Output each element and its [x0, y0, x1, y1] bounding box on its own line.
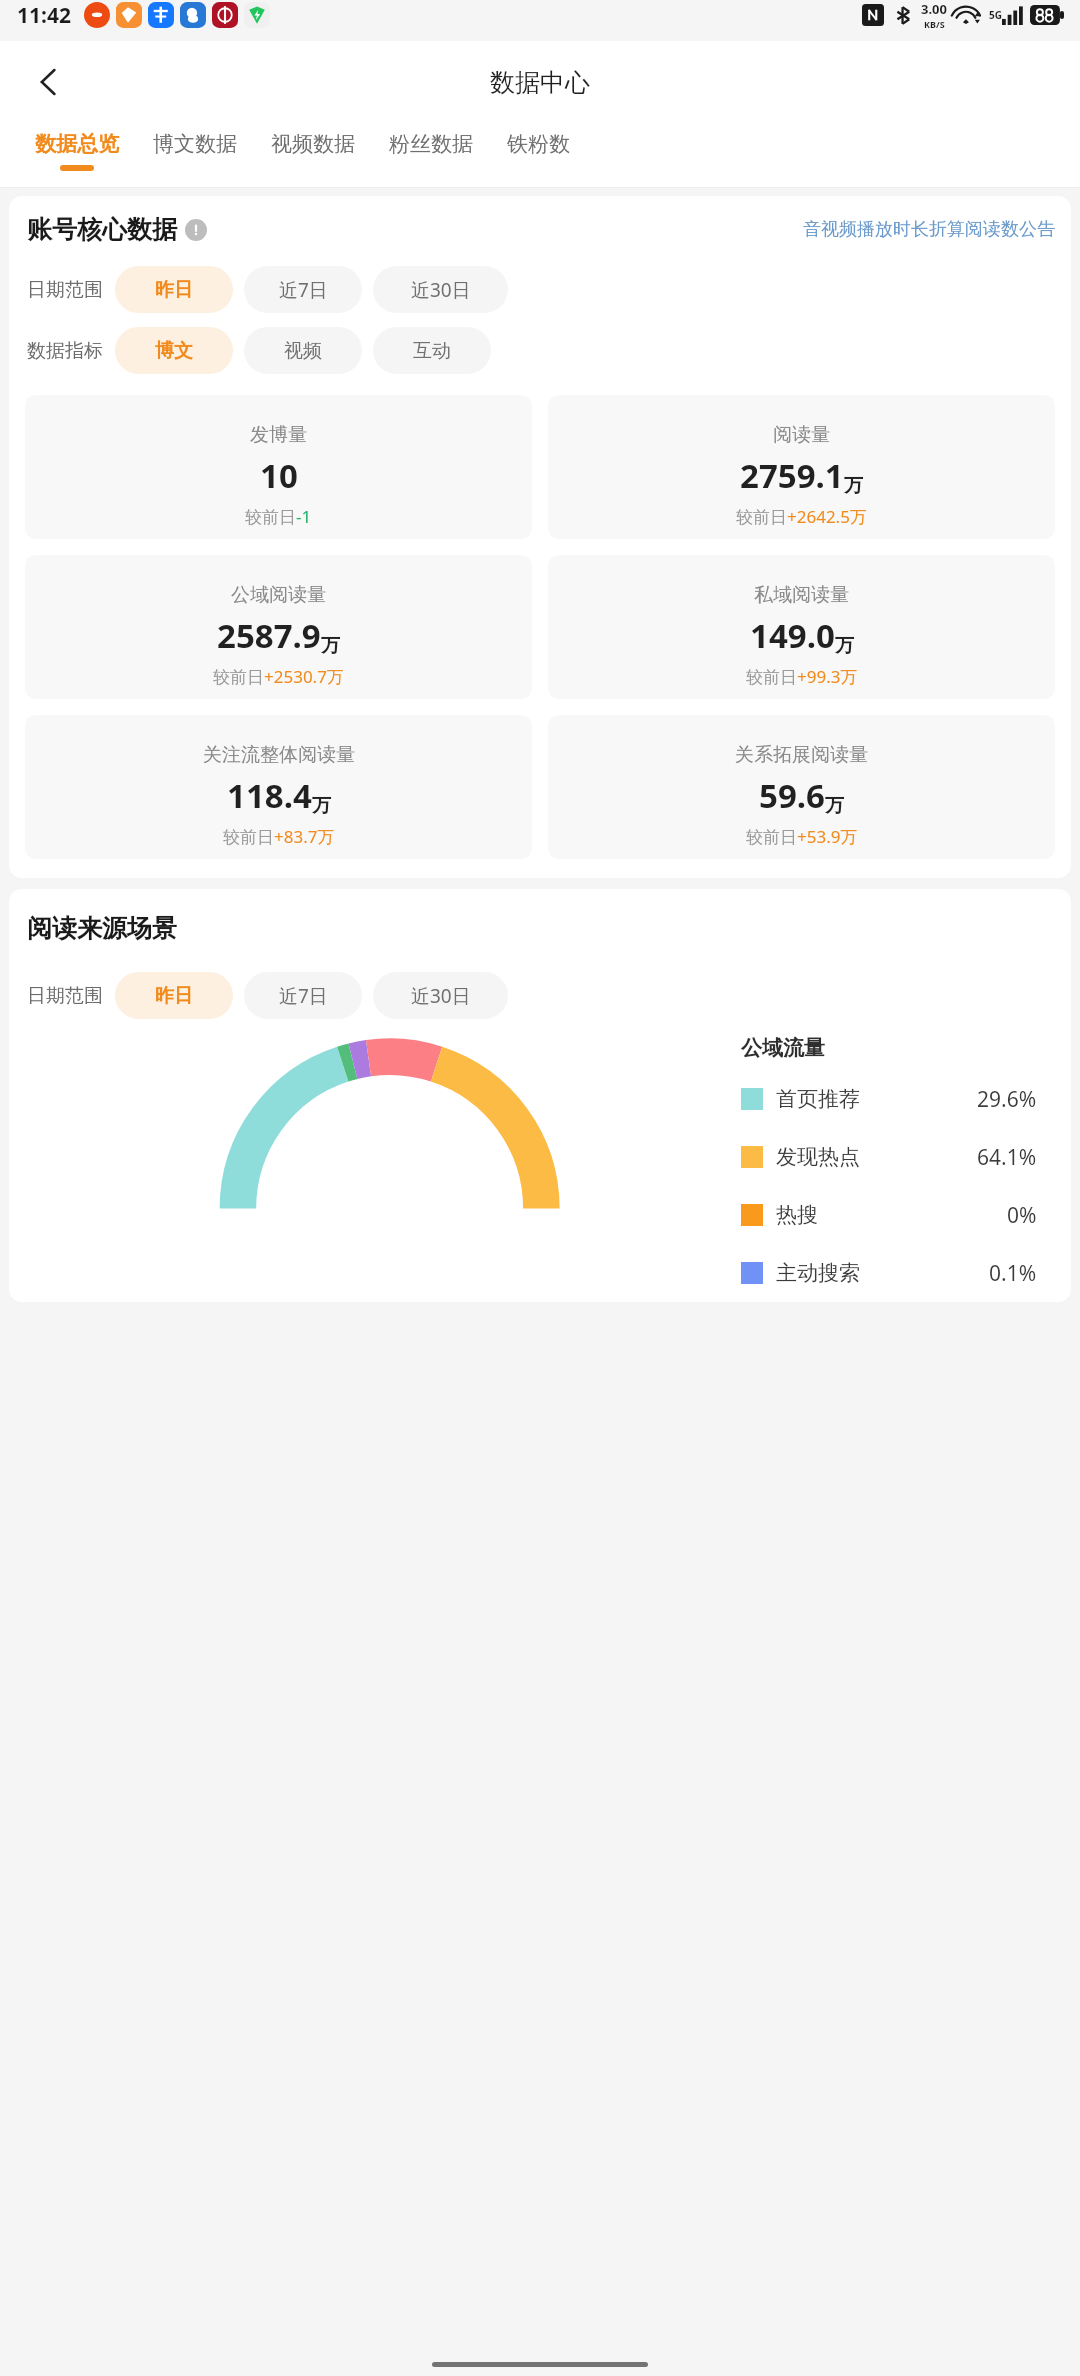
staticText: 粉丝数据: [389, 131, 473, 157]
staticText: 万: [312, 794, 331, 818]
button[interactable]: 近7日: [244, 972, 362, 1019]
staticText: 近7日: [279, 983, 328, 1009]
staticText: 较前日+83.7万: [223, 825, 335, 848]
staticText: 昨日: [155, 278, 193, 302]
staticText: 视频: [284, 339, 322, 363]
button[interactable]: 数据总览: [18, 123, 136, 171]
staticText: 阅读来源场景: [27, 913, 177, 944]
staticText: 较前日+2530.7万: [213, 665, 344, 688]
staticText: 数据总览: [35, 131, 119, 157]
staticText: 日期范围: [27, 278, 103, 302]
staticText: 11:42: [17, 1, 71, 30]
staticText: 29.6%: [977, 1085, 1037, 1114]
staticText: 较前日+99.3万: [746, 665, 858, 688]
button[interactable]: 博文数据: [136, 123, 254, 165]
staticText: 发现热点: [776, 1144, 860, 1170]
staticText: 较前日-1: [245, 505, 312, 528]
button[interactable]: 公域阅读量: [25, 555, 532, 699]
staticText: 首页推荐: [776, 1086, 860, 1112]
staticText: 近30日: [411, 277, 471, 303]
button[interactable]: 近30日: [373, 266, 508, 313]
button[interactable]: 近7日: [244, 266, 362, 313]
staticText: 公域阅读量: [231, 583, 326, 607]
staticText: 59.6: [759, 773, 825, 818]
staticText: 较前日+2642.5万: [736, 505, 867, 528]
button[interactable]: Back: [22, 55, 76, 109]
staticText: 账号核心数据: [27, 214, 177, 245]
staticText: 热搜: [776, 1202, 818, 1228]
staticText: 互动: [413, 339, 451, 363]
button[interactable]: 粉丝数据: [372, 123, 490, 165]
staticText: 数据指标: [27, 339, 103, 363]
button[interactable]: 私域阅读量: [548, 555, 1055, 699]
staticText: 博文数据: [153, 131, 237, 157]
staticText: 近30日: [411, 983, 471, 1009]
button[interactable]: 阅读量: [548, 395, 1055, 539]
staticText: 5G: [989, 8, 1002, 22]
staticText: 0%: [1007, 1201, 1037, 1230]
staticText: 日期范围: [27, 984, 103, 1008]
staticText: 万: [825, 794, 844, 818]
staticText: 万: [321, 634, 340, 658]
button[interactable]: 视频数据: [254, 123, 372, 165]
staticText: 昨日: [155, 984, 193, 1008]
staticText: 关系拓展阅读量: [735, 743, 868, 767]
button[interactable]: 昨日: [115, 972, 233, 1019]
button[interactable]: 热搜: [741, 1186, 1071, 1244]
button[interactable]: 首页推荐: [741, 1070, 1071, 1128]
staticText: 较前日+53.9万: [746, 825, 858, 848]
staticText: 万: [835, 634, 854, 658]
button[interactable]: 关注流整体阅读量: [25, 715, 532, 859]
staticText: 10: [260, 453, 298, 498]
button[interactable]: 关系拓展阅读量: [548, 715, 1055, 859]
staticText: 118.4: [227, 773, 312, 818]
button[interactable]: 近30日: [373, 972, 508, 1019]
button[interactable]: 视频: [244, 327, 362, 374]
staticText: 3.00: [921, 0, 947, 18]
staticText: 音视频播放时长折算阅读数公告: [803, 218, 1055, 241]
staticText: 数据中心: [490, 67, 590, 98]
staticText: 私域阅读量: [754, 583, 849, 607]
staticText: 0.1%: [989, 1259, 1037, 1288]
button[interactable]: Info: [185, 219, 207, 241]
staticText: 博文: [155, 339, 193, 363]
button[interactable]: 昨日: [115, 266, 233, 313]
staticText: 2759.1: [740, 453, 844, 498]
staticText: 近7日: [279, 277, 328, 303]
staticText: 发博量: [250, 423, 307, 447]
staticText: 主动搜索: [776, 1260, 860, 1286]
button[interactable]: 主动搜索: [741, 1244, 1071, 1302]
staticText: 关注流整体阅读量: [203, 743, 355, 767]
staticText: 64.1%: [977, 1143, 1037, 1172]
staticText: KB/S: [924, 18, 945, 30]
staticText: 阅读量: [773, 423, 830, 447]
staticText: 2587.9: [217, 613, 321, 658]
button[interactable]: 铁粉数: [490, 123, 587, 165]
button[interactable]: 音视频播放时长折算阅读数公告: [803, 218, 1055, 241]
button[interactable]: 发博量: [25, 395, 532, 539]
button[interactable]: 互动: [373, 327, 491, 374]
staticText: 149.0: [750, 613, 835, 658]
button[interactable]: 发现热点: [741, 1128, 1071, 1186]
staticText: 公域流量: [741, 1035, 825, 1061]
button[interactable]: 博文: [115, 327, 233, 374]
staticText: 万: [844, 474, 863, 498]
staticText: 视频数据: [271, 131, 355, 157]
staticText: 铁粉数: [507, 131, 570, 157]
